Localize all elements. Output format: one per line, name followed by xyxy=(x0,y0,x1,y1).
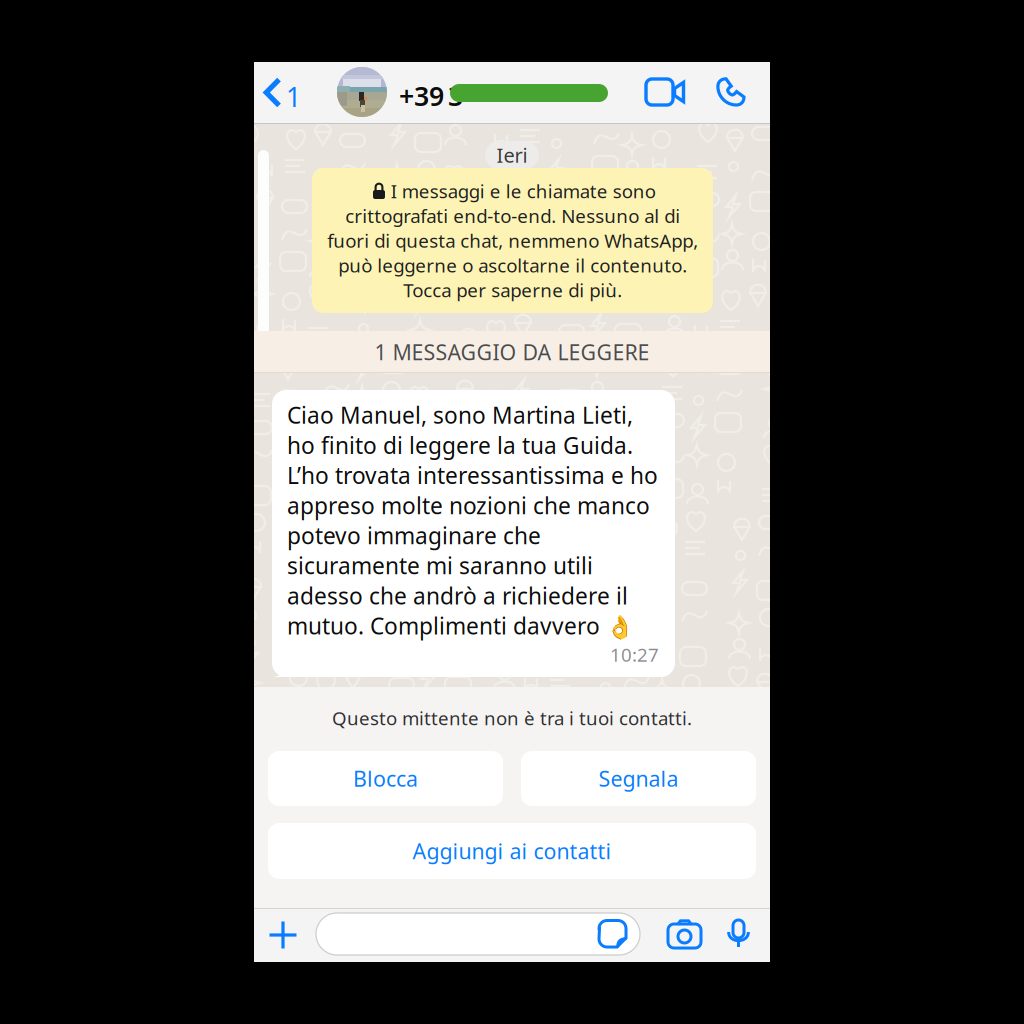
staticText: 1 MESSAGGIO DA LEGGERE xyxy=(374,338,649,366)
staticText: 1 xyxy=(286,79,301,114)
button[interactable]: Contact info xyxy=(337,62,612,124)
staticText: +39 xyxy=(399,78,444,113)
staticText: Ieri xyxy=(496,142,527,168)
staticText: Blocca xyxy=(353,764,418,793)
staticText: 3 xyxy=(448,78,463,113)
button[interactable]: I messaggi e le chiamate sono crittograf… xyxy=(312,168,713,313)
staticText: Aggiungi ai contatti xyxy=(412,837,611,865)
button[interactable]: Aggiungi ai contatti xyxy=(268,823,756,879)
button[interactable]: Video call xyxy=(646,79,685,105)
button[interactable]: 1 xyxy=(263,77,311,109)
button[interactable]: Camera xyxy=(668,919,701,948)
button[interactable]: Stickers xyxy=(599,920,627,948)
staticText: I messaggi e le chiamate sono crittograf… xyxy=(327,178,698,302)
staticText: Questo mittente non è tra i tuoi contatt… xyxy=(332,706,692,730)
staticText: 10:27 xyxy=(610,642,659,667)
staticText: Ciao Manuel, sono Martina Lieti, ho fini… xyxy=(287,400,658,641)
button[interactable]: Attach xyxy=(269,921,297,949)
button[interactable]: Blocca xyxy=(268,751,503,806)
staticText: Segnala xyxy=(598,764,678,793)
button[interactable]: Segnala xyxy=(521,751,756,806)
button[interactable]: Voice message xyxy=(727,919,750,948)
button[interactable]: Voice call xyxy=(716,77,746,107)
